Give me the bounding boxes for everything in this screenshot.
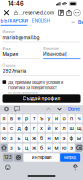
- staticText: 123: [4, 155, 12, 160]
- staticText: напред: [64, 155, 77, 160]
- button[interactable]: о: [60, 114, 67, 123]
- staticText: ь: [17, 144, 20, 151]
- button[interactable]: а: [0, 124, 7, 132]
- button[interactable]: Close: [2, 8, 11, 17]
- button[interactable]: [14, 153, 23, 162]
- button[interactable]: з: [8, 144, 15, 152]
- button[interactable]: н: [45, 144, 52, 152]
- button[interactable]: Previous field: [45, 105, 52, 112]
- button[interactable]: р: [23, 114, 30, 123]
- staticText: э: [70, 144, 73, 151]
- button[interactable]: с: [8, 124, 15, 132]
- button[interactable]: д: [15, 124, 22, 132]
- button[interactable]: г: [30, 124, 37, 132]
- staticText: ш: [69, 125, 73, 131]
- button[interactable]: [75, 144, 82, 152]
- button[interactable]: [0, 144, 7, 152]
- button[interactable]: и: [53, 114, 60, 123]
- staticText: р: [25, 115, 28, 122]
- button[interactable]: й: [45, 124, 52, 132]
- button[interactable]: ENGLISH: [30, 18, 51, 26]
- button[interactable]: ы: [75, 134, 82, 142]
- button[interactable]: ъ: [38, 114, 45, 123]
- staticText: ъ: [40, 115, 43, 122]
- staticText: БЪЛГАРСКИ: [0, 18, 27, 24]
- staticText: mariab@mail.bg: [2, 34, 39, 40]
- button[interactable]: м: [53, 144, 60, 152]
- button[interactable]: ж: [30, 144, 37, 152]
- staticText: ж: [32, 144, 36, 151]
- button[interactable]: ю: [0, 134, 7, 142]
- button[interactable]: ь: [15, 144, 22, 152]
- staticText: Фамилия: [43, 46, 59, 51]
- button[interactable]: Next field: [56, 105, 63, 112]
- button[interactable]: э: [68, 144, 75, 152]
- button[interactable]: …reserved.com: [14, 9, 54, 17]
- button[interactable]: е: [15, 114, 22, 123]
- button[interactable]: ц: [23, 144, 30, 152]
- staticText: м: [54, 144, 58, 151]
- button[interactable]: б: [38, 144, 45, 152]
- button[interactable]: напред: [60, 153, 80, 162]
- button[interactable]: ж: [30, 134, 37, 142]
- staticText: 14:46: [8, 0, 24, 7]
- staticText: е: [17, 115, 20, 122]
- button[interactable]: Settings: [3, 105, 10, 112]
- staticText: Да, приемам общите условия и: [8, 80, 63, 85]
- button[interactable]: н: [45, 134, 52, 142]
- button[interactable]: ц: [23, 134, 30, 142]
- button[interactable]: в: [8, 114, 15, 123]
- button[interactable]: Emoji: [3, 163, 12, 172]
- button[interactable]: п: [68, 114, 75, 123]
- button[interactable]: м: [53, 134, 60, 142]
- button[interactable]: интервал: [24, 153, 60, 162]
- staticText: в: [10, 115, 13, 122]
- button[interactable]: Share: [65, 9, 73, 17]
- button[interactable]: у: [45, 114, 52, 123]
- button[interactable]: ю: [60, 144, 67, 152]
- button[interactable]: ф: [23, 124, 30, 132]
- button[interactable]: з: [8, 134, 15, 142]
- button[interactable]: Done: [68, 106, 80, 112]
- button[interactable]: ш: [68, 124, 75, 132]
- staticText: ф: [69, 135, 73, 141]
- staticText: д: [17, 125, 20, 131]
- staticText: щ: [77, 125, 81, 131]
- staticText: э: [62, 135, 65, 141]
- staticText: б: [40, 144, 43, 151]
- staticText: о: [62, 115, 65, 122]
- button[interactable]: щ: [75, 124, 82, 132]
- staticText: г: [33, 125, 35, 131]
- button[interactable]: х: [38, 124, 45, 132]
- staticText: интервал: [32, 155, 51, 160]
- button[interactable]: ч: [75, 114, 82, 123]
- button[interactable]: к: [53, 124, 60, 132]
- button[interactable]: Вход: [78, 19, 83, 26]
- button[interactable]: Създай профил: [2, 94, 80, 103]
- staticText: з: [10, 135, 13, 141]
- staticText: с: [10, 125, 13, 131]
- staticText: ю: [2, 135, 6, 141]
- staticText: ц: [25, 144, 28, 151]
- staticText: а: [2, 125, 5, 131]
- staticText: ы: [77, 135, 81, 141]
- staticText: т: [33, 115, 35, 122]
- button[interactable]: т: [30, 114, 37, 123]
- button[interactable]: Passwords: [13, 105, 20, 112]
- button[interactable]: я: [0, 114, 7, 123]
- staticText: на регистрираните: [8, 91, 38, 94]
- staticText: з: [10, 144, 13, 151]
- staticText: Име: [2, 46, 10, 51]
- button[interactable]: More: [73, 9, 81, 17]
- button[interactable]: э: [60, 134, 67, 142]
- button[interactable]: Bookmarks: [57, 9, 65, 17]
- staticText: Имейл: [2, 30, 14, 34]
- button[interactable]: ь: [15, 134, 22, 142]
- button[interactable]: ф: [68, 134, 75, 142]
- button[interactable]: Dictation: [71, 163, 79, 172]
- button[interactable]: 123: [3, 153, 13, 162]
- button[interactable]: БЪЛГАРСКИ: [0, 18, 27, 26]
- button[interactable]: л: [60, 124, 67, 132]
- button[interactable]: б: [38, 134, 45, 142]
- staticText: Парола: [2, 63, 15, 67]
